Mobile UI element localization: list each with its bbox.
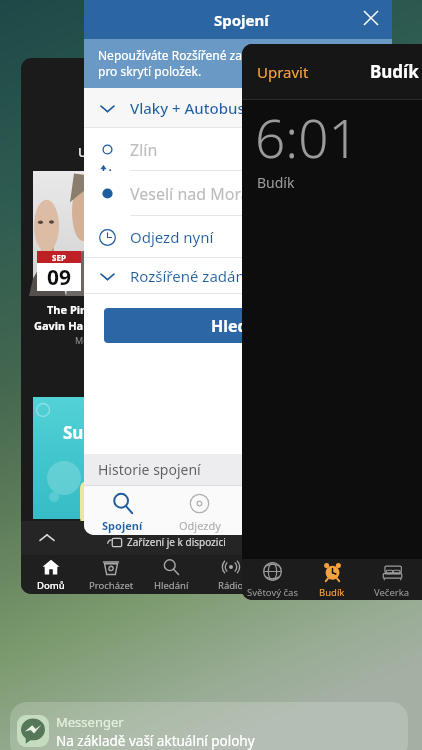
button[interactable]: Veselí nad Moravou [84, 171, 392, 216]
button[interactable]: Odjezd nyní [84, 216, 392, 258]
staticText: Vlaky + Autobusy [130, 98, 253, 118]
button[interactable]: Rozšířené zadání [84, 258, 392, 294]
button[interactable]: Hledat [104, 308, 372, 343]
staticText: Spojení [102, 518, 143, 533]
button[interactable]: Události [21, 58, 261, 594]
staticText: MeetFactory [75, 334, 261, 346]
button[interactable]: Rozbalit [37, 528, 57, 548]
button[interactable]: Večerka [362, 561, 422, 599]
staticText: Hledat [211, 315, 265, 337]
button[interactable]: Zlín [84, 128, 392, 171]
staticText: Gavin Harrison [34, 318, 261, 333]
staticText: Události [78, 143, 261, 161]
staticText: Nepoužíváte Rozšířené zadání pro skrytí … [98, 47, 267, 80]
button[interactable]: Spojení [84, 0, 392, 535]
staticText: Hledání [154, 579, 189, 592]
staticText: Messenger [56, 713, 124, 731]
button[interactable]: Messenger [10, 702, 408, 750]
staticText: Zlín [130, 139, 158, 161]
button[interactable]: Upravit [257, 62, 309, 82]
button[interactable]: Odjezdy [161, 486, 238, 533]
button[interactable]: Vlaky + Autobusy [84, 88, 392, 128]
staticText: Odjezdy [179, 518, 221, 533]
staticText: Zařízení je k dispozici [127, 535, 226, 549]
button[interactable]: Spojení [84, 486, 161, 533]
button[interactable]: Rádio [201, 558, 261, 592]
button[interactable]: Prohodit [99, 165, 115, 181]
staticText: Rádio [218, 579, 244, 592]
staticText: Historie spojení [98, 460, 201, 479]
staticText: The Pineapple Thief feat. [47, 302, 261, 317]
staticText: Budík [257, 173, 295, 192]
button[interactable]: Hledání [141, 558, 201, 592]
staticText: Světový čas [247, 586, 298, 599]
staticText: 09 [47, 263, 72, 291]
staticText: Rozšířené zadání [130, 266, 249, 286]
staticText: Odjezd nyní [130, 227, 214, 247]
button[interactable]: Zavřít [358, 5, 384, 31]
staticText: Spojení [214, 10, 269, 30]
staticText: Večerka [374, 586, 410, 599]
button[interactable]: Domů [21, 558, 81, 592]
staticText: Na základě vaší aktuální polohy [56, 732, 255, 750]
button[interactable]: Procházet [81, 558, 141, 592]
staticText: Summer [63, 421, 135, 444]
staticText: Procházet [89, 579, 134, 592]
staticText: 6:01 [255, 101, 359, 173]
button[interactable]: Upravit [242, 44, 422, 600]
button[interactable]: Budík [302, 561, 362, 599]
staticText: Veselí nad Moravou [130, 183, 278, 205]
staticText: Budík [319, 586, 345, 599]
staticText: Domů [37, 579, 65, 592]
staticText: Budík [370, 60, 419, 83]
staticText: SEP [52, 252, 66, 263]
button[interactable]: Mapa [238, 486, 315, 533]
button[interactable]: Světový čas [242, 561, 302, 599]
